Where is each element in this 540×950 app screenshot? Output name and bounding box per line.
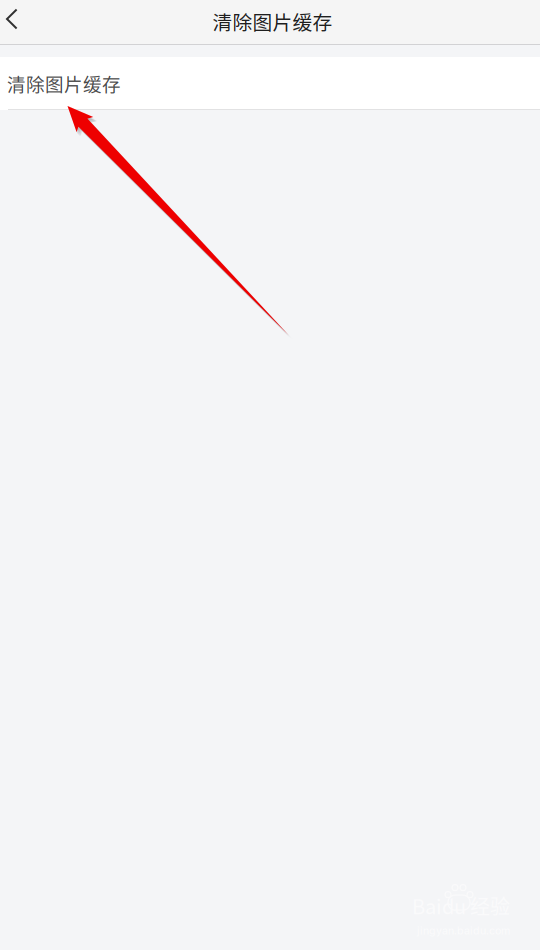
button[interactable]: 清除图片缓存 bbox=[0, 57, 540, 110]
staticText: 清除图片缓存 bbox=[212, 7, 332, 36]
button[interactable]: Back bbox=[0, 0, 44, 45]
staticText: 清除图片缓存 bbox=[7, 70, 121, 97]
